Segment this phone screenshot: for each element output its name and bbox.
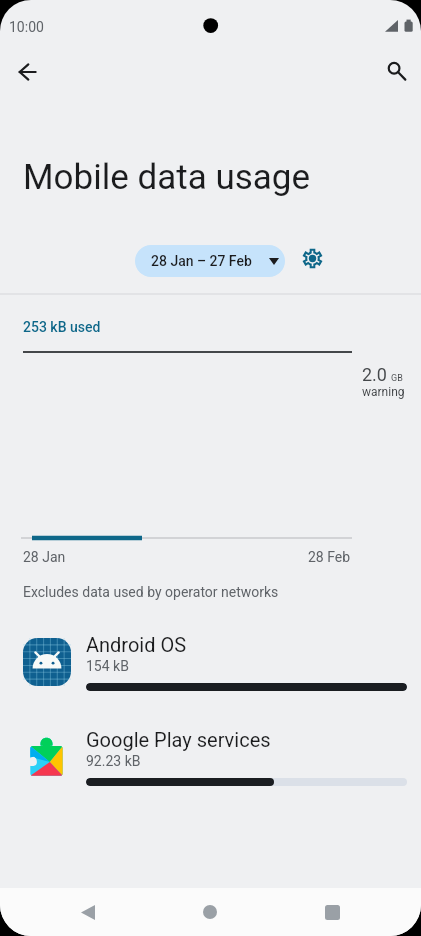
staticText: 10:00 xyxy=(9,19,44,35)
staticText: GB xyxy=(391,373,403,384)
staticText: warning xyxy=(362,385,405,399)
button[interactable]: Android OS xyxy=(0,633,421,723)
button[interactable]: Settings xyxy=(292,238,332,278)
button[interactable]: 28 Jan – 27 Feb xyxy=(135,245,285,277)
button[interactable]: Back xyxy=(64,888,112,936)
staticText: Excludes data used by operator networks xyxy=(23,584,279,600)
button[interactable]: Google Play services xyxy=(0,728,421,818)
staticText: 253 kB used xyxy=(23,319,101,335)
staticText: 28 Jan – 27 Feb xyxy=(151,253,252,269)
staticText: Mobile data usage xyxy=(23,157,310,198)
button[interactable]: Back xyxy=(3,48,51,96)
button[interactable]: Recents xyxy=(308,888,356,936)
button[interactable]: Home xyxy=(186,888,234,936)
staticText: 92.23 kB xyxy=(86,753,141,769)
staticText: Android OS xyxy=(86,633,187,656)
staticText: 2.0 xyxy=(362,364,387,385)
staticText: Google Play services xyxy=(86,728,271,751)
staticText: 154 kB xyxy=(86,658,129,674)
staticText: 28 Feb xyxy=(308,549,351,565)
button[interactable]: Search xyxy=(370,48,418,96)
staticText: 28 Jan xyxy=(23,549,66,565)
